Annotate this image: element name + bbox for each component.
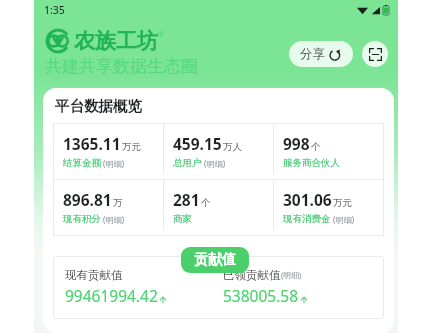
- button[interactable]: 已领贡献值: [223, 268, 372, 306]
- staticText: 万元: [333, 197, 352, 209]
- staticText: (明细): [281, 270, 302, 281]
- staticText: (明细): [333, 214, 355, 225]
- button[interactable]: 301.06: [274, 180, 383, 235]
- staticText: 已领贡献值: [223, 268, 281, 282]
- staticText: 万: [113, 197, 123, 209]
- staticText: 服务商合伙人: [283, 157, 340, 169]
- staticText: 贡献值: [194, 251, 236, 269]
- staticText: 平台数据概览: [55, 97, 142, 115]
- button[interactable]: 281: [164, 180, 273, 235]
- button[interactable]: 896.81: [54, 180, 163, 235]
- staticText: 896.81: [63, 189, 112, 210]
- staticText: 商家: [173, 213, 192, 225]
- staticText: 个: [201, 197, 211, 209]
- staticText: 个: [311, 141, 321, 153]
- staticText: 现有贡献值: [65, 268, 123, 282]
- staticText: 459.15: [173, 133, 222, 154]
- staticText: 99461994.42: [65, 285, 158, 306]
- staticText: 现有积分: [63, 213, 101, 225]
- staticText: 万元: [122, 141, 141, 153]
- button[interactable]: 扫一扫: [362, 41, 388, 67]
- button[interactable]: 998: [274, 124, 383, 179]
- button[interactable]: 分享: [289, 41, 353, 67]
- staticText: 万人: [223, 141, 242, 153]
- staticText: 总用户: [173, 157, 202, 169]
- staticText: 998: [283, 133, 310, 154]
- button[interactable]: 贡献值: [181, 247, 249, 273]
- staticText: 农族工坊: [74, 28, 158, 54]
- staticText: 1:35: [44, 3, 65, 17]
- staticText: 现有消费金: [283, 213, 331, 225]
- button[interactable]: 现有贡献值: [65, 268, 213, 306]
- staticText: 538005.58: [223, 285, 299, 306]
- staticText: 共建共享数据生态圈: [45, 56, 198, 77]
- staticText: (明细): [204, 158, 226, 169]
- staticText: 分享: [300, 46, 325, 62]
- staticText: ®: [158, 30, 164, 40]
- staticText: (明细): [103, 158, 125, 169]
- button[interactable]: 1365.11: [54, 124, 163, 179]
- staticText: 281: [173, 189, 200, 210]
- button[interactable]: 459.15: [164, 124, 273, 179]
- staticText: 301.06: [283, 189, 332, 210]
- staticText: 1365.11: [63, 133, 121, 154]
- staticText: (明细): [103, 214, 125, 225]
- staticText: 结算金额: [63, 157, 101, 169]
